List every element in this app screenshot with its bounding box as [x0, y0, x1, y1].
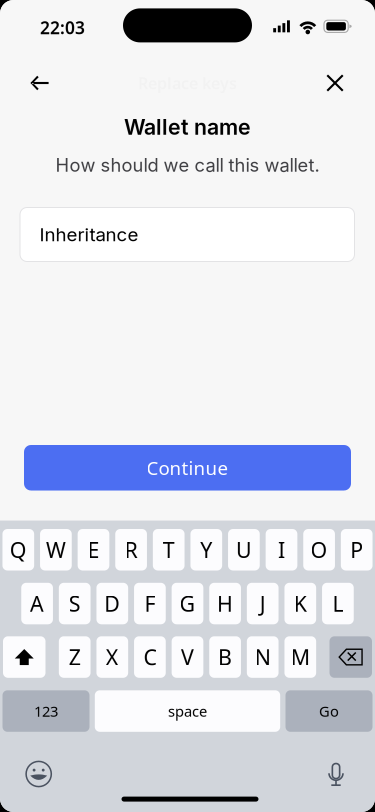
- staticText: G: [179, 589, 195, 618]
- button[interactable]: X: [96, 636, 128, 678]
- staticText: R: [125, 536, 138, 564]
- staticText: F: [144, 589, 155, 618]
- button[interactable]: R: [115, 529, 147, 570]
- button[interactable]: L: [322, 583, 354, 624]
- staticText: W: [46, 536, 66, 564]
- staticText: 22:03: [40, 16, 85, 39]
- staticText: S: [69, 589, 81, 618]
- staticText: Q: [10, 536, 27, 564]
- staticText: N: [255, 643, 271, 671]
- staticText: Go: [319, 701, 339, 721]
- staticText: Inheritance: [39, 223, 138, 246]
- button[interactable]: P: [341, 529, 373, 570]
- button[interactable]: W: [40, 529, 72, 570]
- button[interactable]: T: [153, 529, 185, 570]
- staticText: P: [350, 536, 363, 564]
- staticText: D: [104, 589, 120, 618]
- button[interactable]: Emoji keyboard: [17, 753, 60, 796]
- button[interactable]: F: [134, 583, 166, 624]
- staticText: Y: [200, 536, 212, 564]
- button[interactable]: C: [134, 636, 166, 678]
- staticText: Z: [69, 643, 81, 671]
- staticText: V: [181, 643, 194, 671]
- staticText: X: [106, 643, 119, 671]
- button[interactable]: E: [78, 529, 109, 570]
- staticText: T: [163, 536, 175, 564]
- button[interactable]: K: [284, 583, 316, 624]
- button[interactable]: Shift: [3, 636, 45, 678]
- button[interactable]: I: [266, 529, 297, 570]
- button[interactable]: V: [172, 636, 203, 678]
- button[interactable]: J: [247, 583, 279, 624]
- staticText: I: [278, 536, 285, 564]
- staticText: How should we call this wallet.: [55, 154, 319, 176]
- button[interactable]: 123: [2, 690, 89, 732]
- button[interactable]: A: [21, 583, 53, 624]
- button[interactable]: O: [303, 529, 335, 570]
- staticText: M: [291, 643, 310, 671]
- staticText: Continue: [146, 455, 228, 480]
- staticText: H: [217, 589, 233, 618]
- button[interactable]: S: [59, 583, 91, 624]
- staticText: U: [236, 536, 252, 564]
- button[interactable]: M: [284, 636, 316, 678]
- staticText: Wallet name: [124, 114, 251, 140]
- staticText: K: [294, 589, 307, 618]
- staticText: L: [332, 589, 343, 618]
- button[interactable]: Continue: [24, 445, 351, 490]
- staticText: O: [311, 536, 328, 564]
- button[interactable]: U: [228, 529, 260, 570]
- button[interactable]: Back: [17, 61, 61, 105]
- button[interactable]: B: [209, 636, 241, 678]
- staticText: space: [168, 701, 207, 721]
- button[interactable]: D: [96, 583, 128, 624]
- staticText: 123: [34, 701, 58, 721]
- button[interactable]: Dictation: [315, 757, 357, 791]
- button[interactable]: Go: [285, 690, 372, 732]
- button[interactable]: Z: [59, 636, 91, 678]
- button[interactable]: Y: [190, 529, 222, 570]
- button[interactable]: Close: [313, 61, 357, 105]
- staticText: C: [143, 643, 156, 671]
- button[interactable]: N: [247, 636, 279, 678]
- button[interactable]: G: [172, 583, 203, 624]
- button[interactable]: Q: [2, 529, 34, 570]
- staticText: J: [260, 589, 266, 618]
- staticText: E: [87, 536, 99, 564]
- button[interactable]: Delete: [329, 636, 372, 678]
- button[interactable]: space: [95, 690, 280, 732]
- staticText: B: [218, 643, 232, 671]
- button[interactable]: H: [209, 583, 241, 624]
- staticText: A: [30, 589, 44, 618]
